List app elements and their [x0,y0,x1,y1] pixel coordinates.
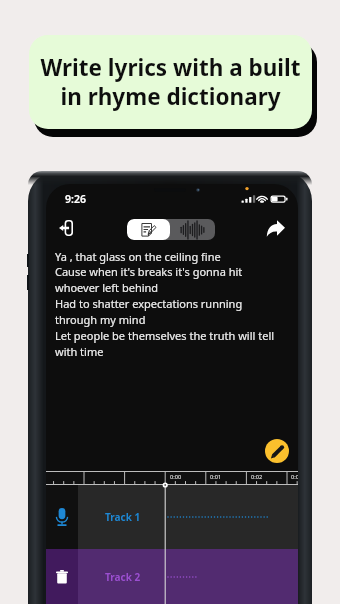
staticText: 0:02 [251,473,263,481]
staticText: Track 2 [105,570,141,584]
button[interactable]: Delete track [46,549,78,604]
staticText: 0:03 [291,473,298,481]
button[interactable]: Lyrics editor [127,219,170,240]
button[interactable]: Audio waveform [170,219,215,240]
staticText: Write lyrics with a built in rhyme dicti… [40,52,301,111]
staticText: 0:01 [210,473,222,481]
button[interactable]: Log out [51,213,81,243]
staticText: 0:00 [170,473,182,481]
button[interactable]: Edit [265,439,289,463]
staticText: Ya , that glass on the ceiling fine Caus… [55,249,298,359]
button[interactable]: Record [46,485,78,549]
staticText: 9:26 [65,192,86,206]
button[interactable]: Share [260,213,290,243]
staticText: Track 1 [105,510,141,524]
